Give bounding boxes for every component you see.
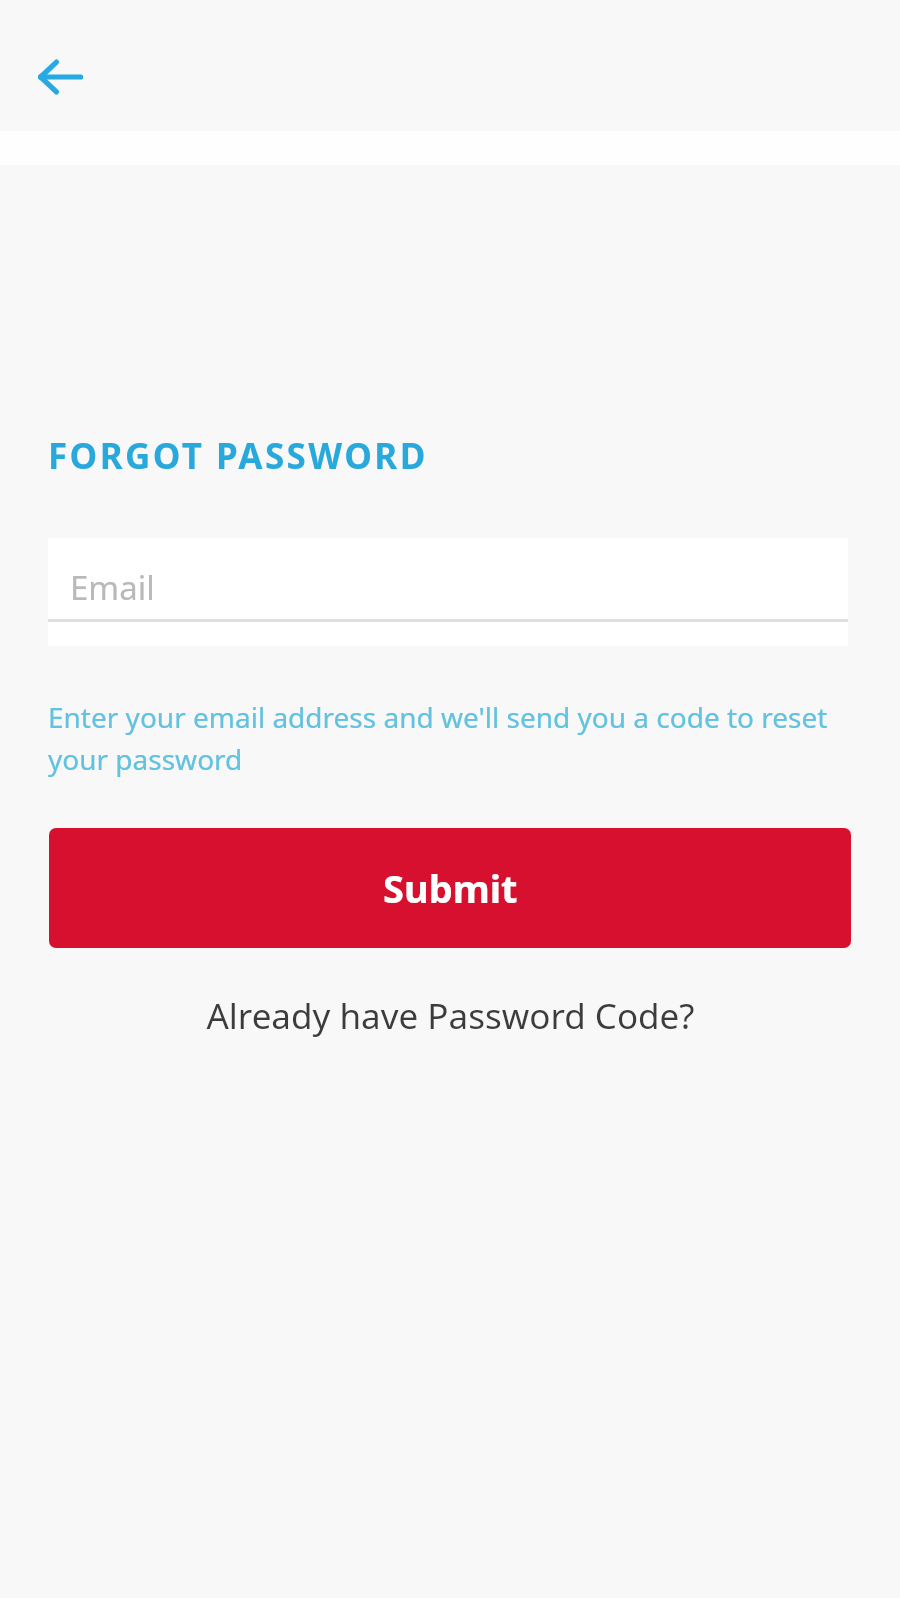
button[interactable]: Already have Password Code? — [49, 980, 851, 1052]
staticText: Submit — [383, 862, 518, 914]
button[interactable]: Submit — [49, 828, 851, 948]
staticText: Email — [70, 565, 155, 610]
staticText: Already have Password Code? — [206, 992, 695, 1040]
button[interactable]: Back — [24, 41, 96, 113]
staticText: FORGOT PASSWORD — [48, 432, 428, 480]
staticText: Enter your email address and we'll send … — [48, 698, 842, 778]
button[interactable]: Email — [48, 538, 848, 646]
